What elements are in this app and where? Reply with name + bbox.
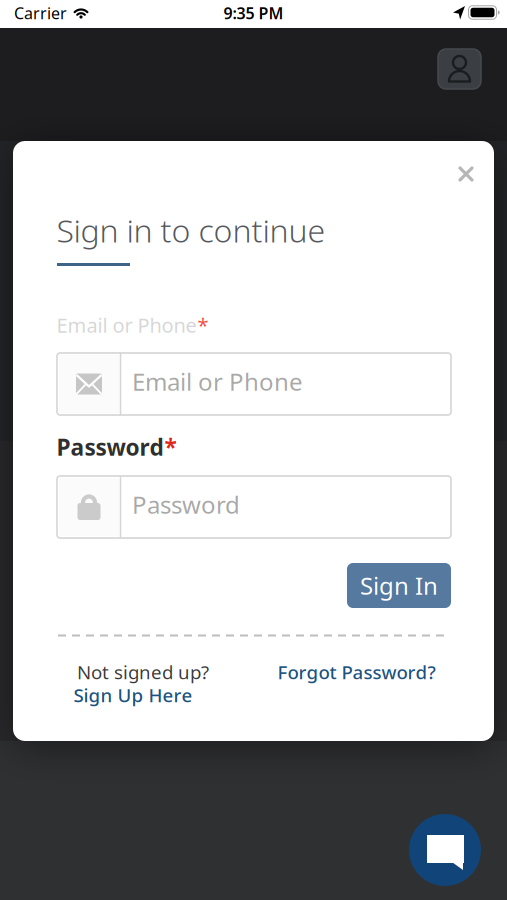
staticText: * [197, 312, 208, 338]
staticText: Password [132, 489, 240, 520]
button[interactable]: Sign In [347, 563, 451, 608]
button[interactable]: Sign Up Here [73, 683, 192, 707]
staticText: 9:35 PM [223, 2, 283, 24]
staticText: Password [56, 432, 163, 462]
staticText: Forgot Password? [277, 660, 435, 684]
button[interactable]: Chat [409, 814, 481, 886]
staticText: * [164, 432, 176, 462]
button[interactable]: Account [438, 49, 481, 89]
staticText: Email or Phone [56, 312, 196, 338]
staticText: Sign in to continue [56, 209, 325, 251]
staticText: Sign Up Here [73, 683, 192, 707]
staticText: Email or Phone [132, 366, 303, 397]
staticText: Not signed up? [77, 660, 209, 684]
button[interactable]: Close [453, 161, 479, 187]
staticText: Carrier [14, 2, 67, 24]
button[interactable]: Forgot Password? [277, 660, 435, 684]
staticText: Sign In [360, 570, 438, 601]
